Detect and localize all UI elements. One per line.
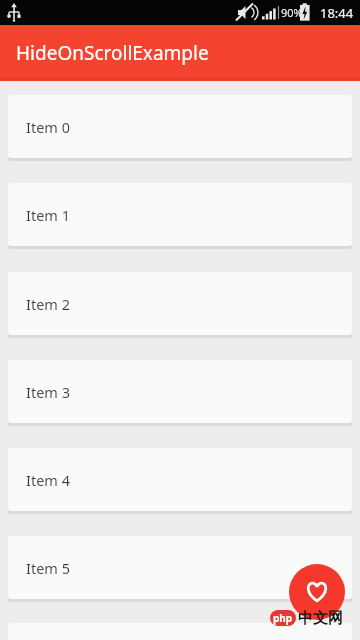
staticText: Item 2 xyxy=(26,294,70,314)
staticText: Item 4 xyxy=(26,470,70,490)
staticText: 90% xyxy=(281,5,303,20)
staticText: 18:44 xyxy=(320,4,354,22)
staticText: Item 1 xyxy=(26,205,70,225)
staticText: Item 3 xyxy=(26,382,70,402)
button[interactable]: Item 5 xyxy=(8,536,352,599)
staticText: 中文网 xyxy=(298,609,343,628)
staticText: HideOnScrollExample xyxy=(16,40,209,66)
button[interactable]: Item 0 xyxy=(8,95,352,158)
staticText: Item 5 xyxy=(26,558,70,578)
button[interactable]: Item 1 xyxy=(8,183,352,246)
button[interactable]: Item 4 xyxy=(8,448,352,511)
staticText: Item 0 xyxy=(26,117,70,137)
button[interactable]: Item 6 xyxy=(8,623,352,640)
button[interactable]: Item 3 xyxy=(8,360,352,423)
button[interactable]: Favorite xyxy=(289,564,345,620)
button[interactable]: Item 2 xyxy=(8,272,352,335)
staticText: php xyxy=(273,611,293,625)
